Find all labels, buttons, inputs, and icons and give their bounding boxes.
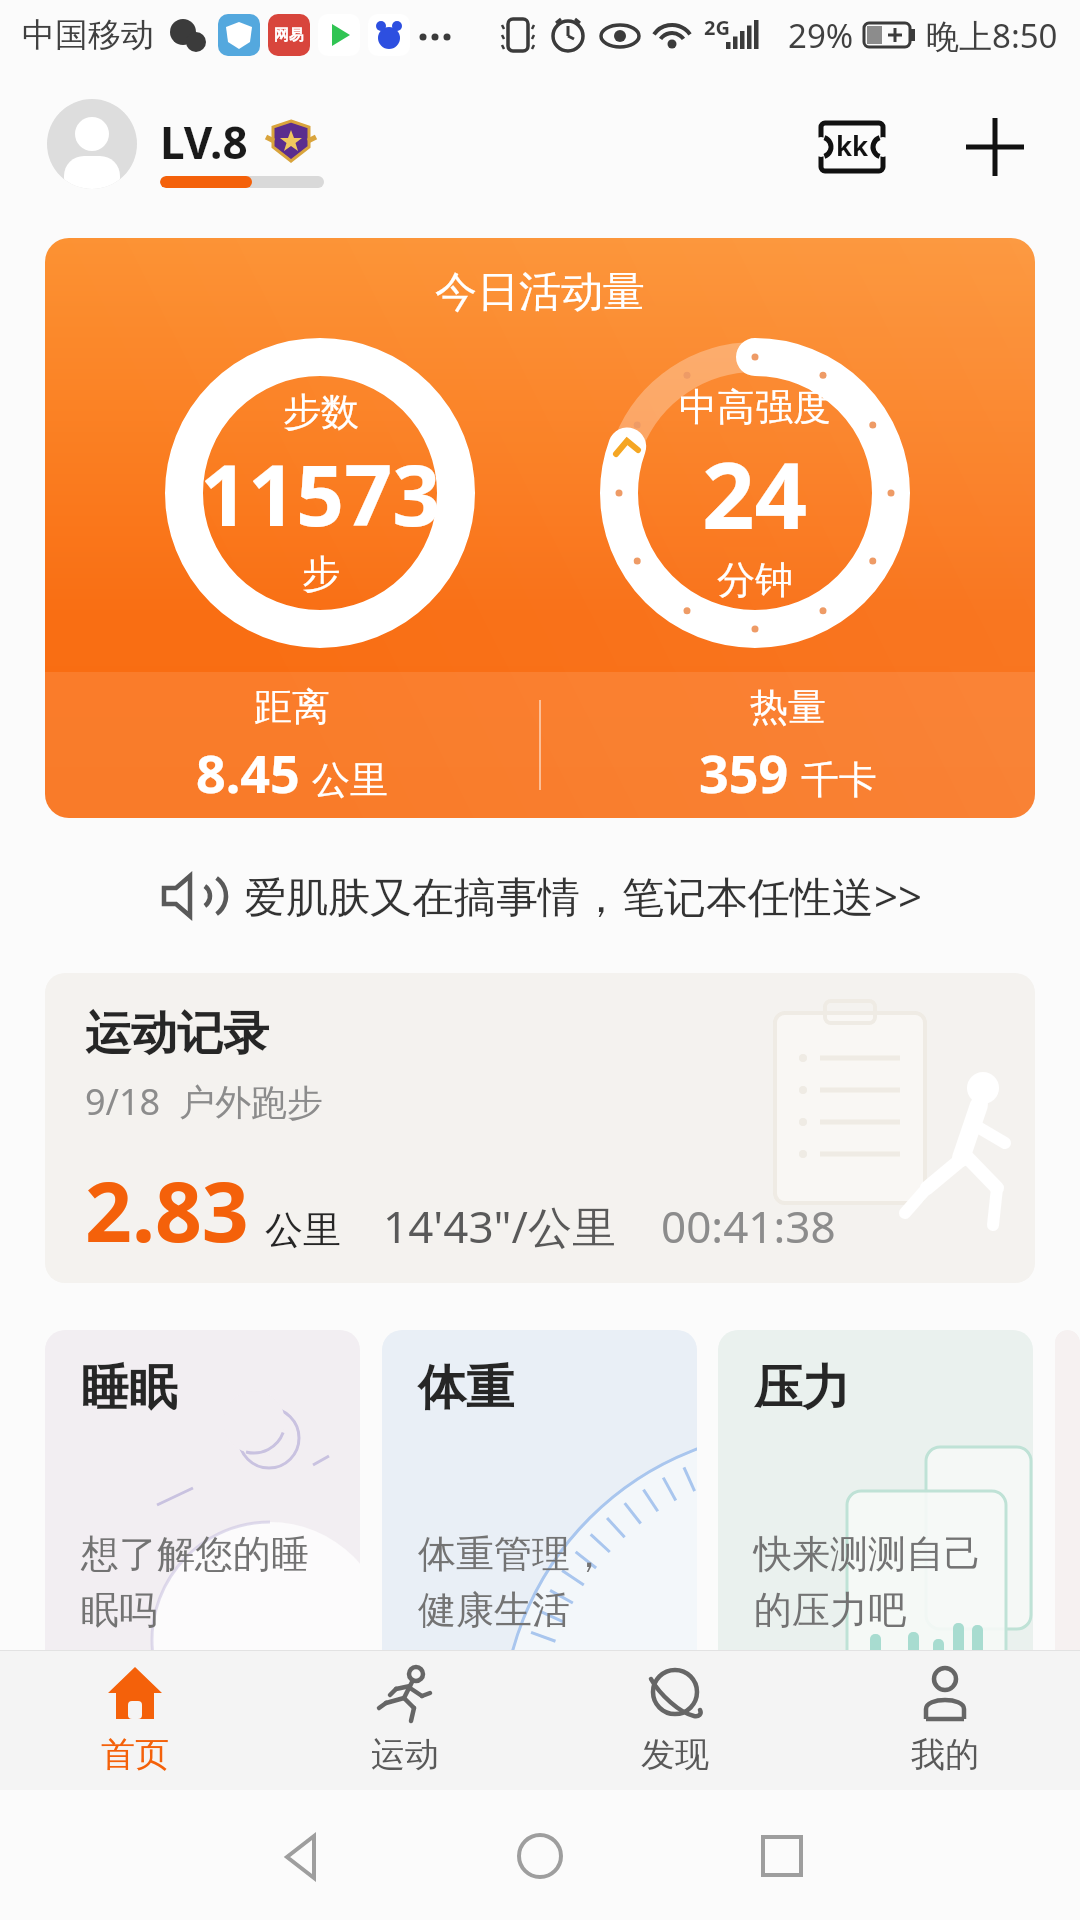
- staticText: 2G: [704, 14, 730, 41]
- staticText: 中高强度: [679, 383, 831, 431]
- button[interactable]: 体重: [382, 1330, 697, 1650]
- staticText: 千卡: [801, 756, 877, 804]
- button[interactable]: [950, 115, 1040, 179]
- staticText: 网易: [274, 26, 304, 45]
- button[interactable]: 运动记录: [45, 973, 1035, 1283]
- staticText: 睡眠: [81, 1358, 177, 1418]
- staticText: LV.8: [160, 112, 248, 172]
- button[interactable]: 今日活动量: [45, 238, 1035, 818]
- button[interactable]: [264, 119, 318, 165]
- staticText: 29%: [788, 13, 854, 58]
- button[interactable]: [47, 99, 137, 189]
- staticText: 压力: [754, 1358, 850, 1418]
- staticText: 晚上8:50: [926, 13, 1058, 58]
- staticText: 24: [702, 431, 808, 556]
- button[interactable]: 睡眠: [45, 1330, 360, 1650]
- button[interactable]: 首页: [0, 1651, 270, 1790]
- button[interactable]: 爱肌肤又在搞事情，笔记本任性送>>: [0, 818, 1080, 973]
- staticText: kk: [836, 128, 869, 163]
- staticText: 今日活动量: [435, 266, 645, 319]
- staticText: 我的: [911, 1733, 979, 1776]
- button[interactable]: [756, 1830, 808, 1882]
- staticText: 快来测测自己: [754, 1530, 982, 1578]
- button[interactable]: kk: [810, 115, 894, 179]
- staticText: 爱肌肤又在搞事情，笔记本任性送>>: [244, 867, 923, 924]
- staticText: 分钟: [717, 556, 793, 604]
- staticText: 健康生活: [418, 1586, 570, 1634]
- button[interactable]: 压力: [718, 1330, 1033, 1650]
- staticText: 步数: [283, 388, 359, 436]
- staticText: 359: [699, 737, 789, 808]
- staticText: 体重: [418, 1358, 514, 1418]
- button[interactable]: 发现: [540, 1651, 810, 1790]
- staticText: 运动: [371, 1733, 439, 1776]
- staticText: 中国移动: [22, 14, 154, 56]
- staticText: 2.83: [85, 1154, 249, 1266]
- staticText: 步: [302, 550, 340, 598]
- staticText: 发现: [641, 1733, 709, 1776]
- staticText: 眠吗: [81, 1586, 157, 1634]
- staticText: 公里: [312, 756, 388, 804]
- staticText: 的压力吧: [754, 1586, 906, 1634]
- staticText: 00:41:38: [661, 1196, 836, 1256]
- staticText: 热量: [750, 683, 826, 731]
- staticText: 9/18 户外跑步: [85, 1077, 323, 1126]
- staticText: 11573: [200, 436, 441, 550]
- button[interactable]: [276, 1830, 328, 1882]
- staticText: 想了解您的睡: [81, 1530, 309, 1578]
- staticText: 运动记录: [85, 1005, 269, 1063]
- button[interactable]: [514, 1830, 566, 1882]
- staticText: 体重管理，: [418, 1530, 608, 1578]
- button[interactable]: 运动: [270, 1651, 540, 1790]
- button[interactable]: 我的: [810, 1651, 1080, 1790]
- staticText: 公里: [265, 1206, 341, 1254]
- staticText: 距离: [254, 683, 330, 731]
- staticText: 8.45: [196, 737, 300, 808]
- staticText: 14'43"/公里: [383, 1196, 616, 1256]
- staticText: 首页: [101, 1733, 169, 1776]
